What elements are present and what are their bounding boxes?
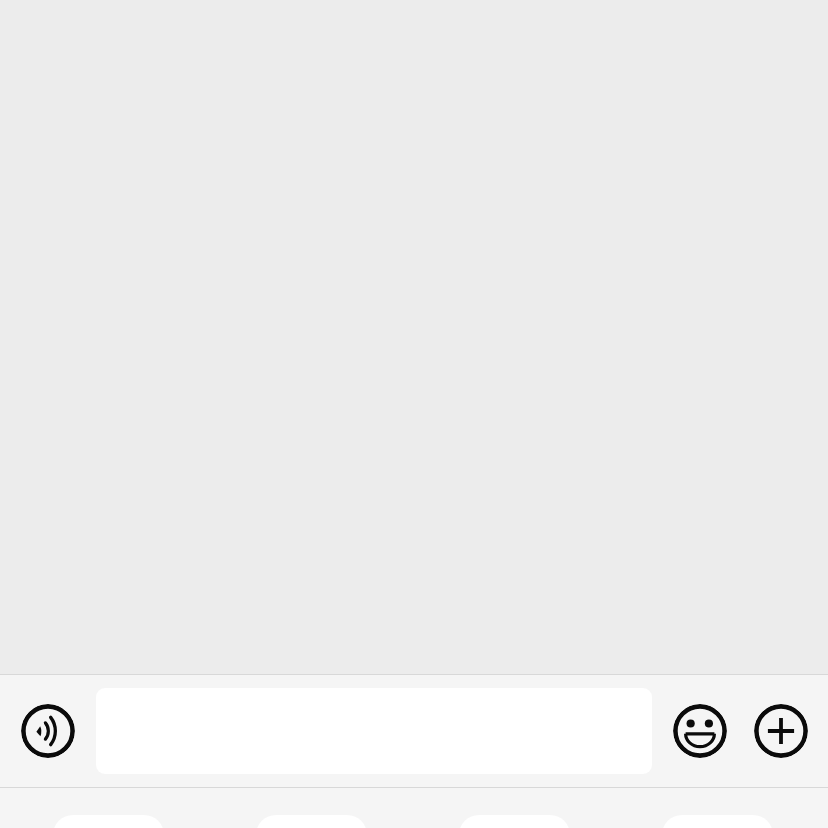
- button[interactable]: Insert emoji: [673, 704, 727, 758]
- button[interactable]: Add attachment: [754, 704, 808, 758]
- button[interactable]: Suggestion 4: [662, 815, 773, 828]
- button[interactable]: Suggestion 3: [459, 815, 570, 828]
- button[interactable]: Suggestion 2: [256, 815, 367, 828]
- button[interactable]: Suggestion 1: [53, 815, 164, 828]
- button[interactable]: Record voice message: [21, 704, 75, 758]
